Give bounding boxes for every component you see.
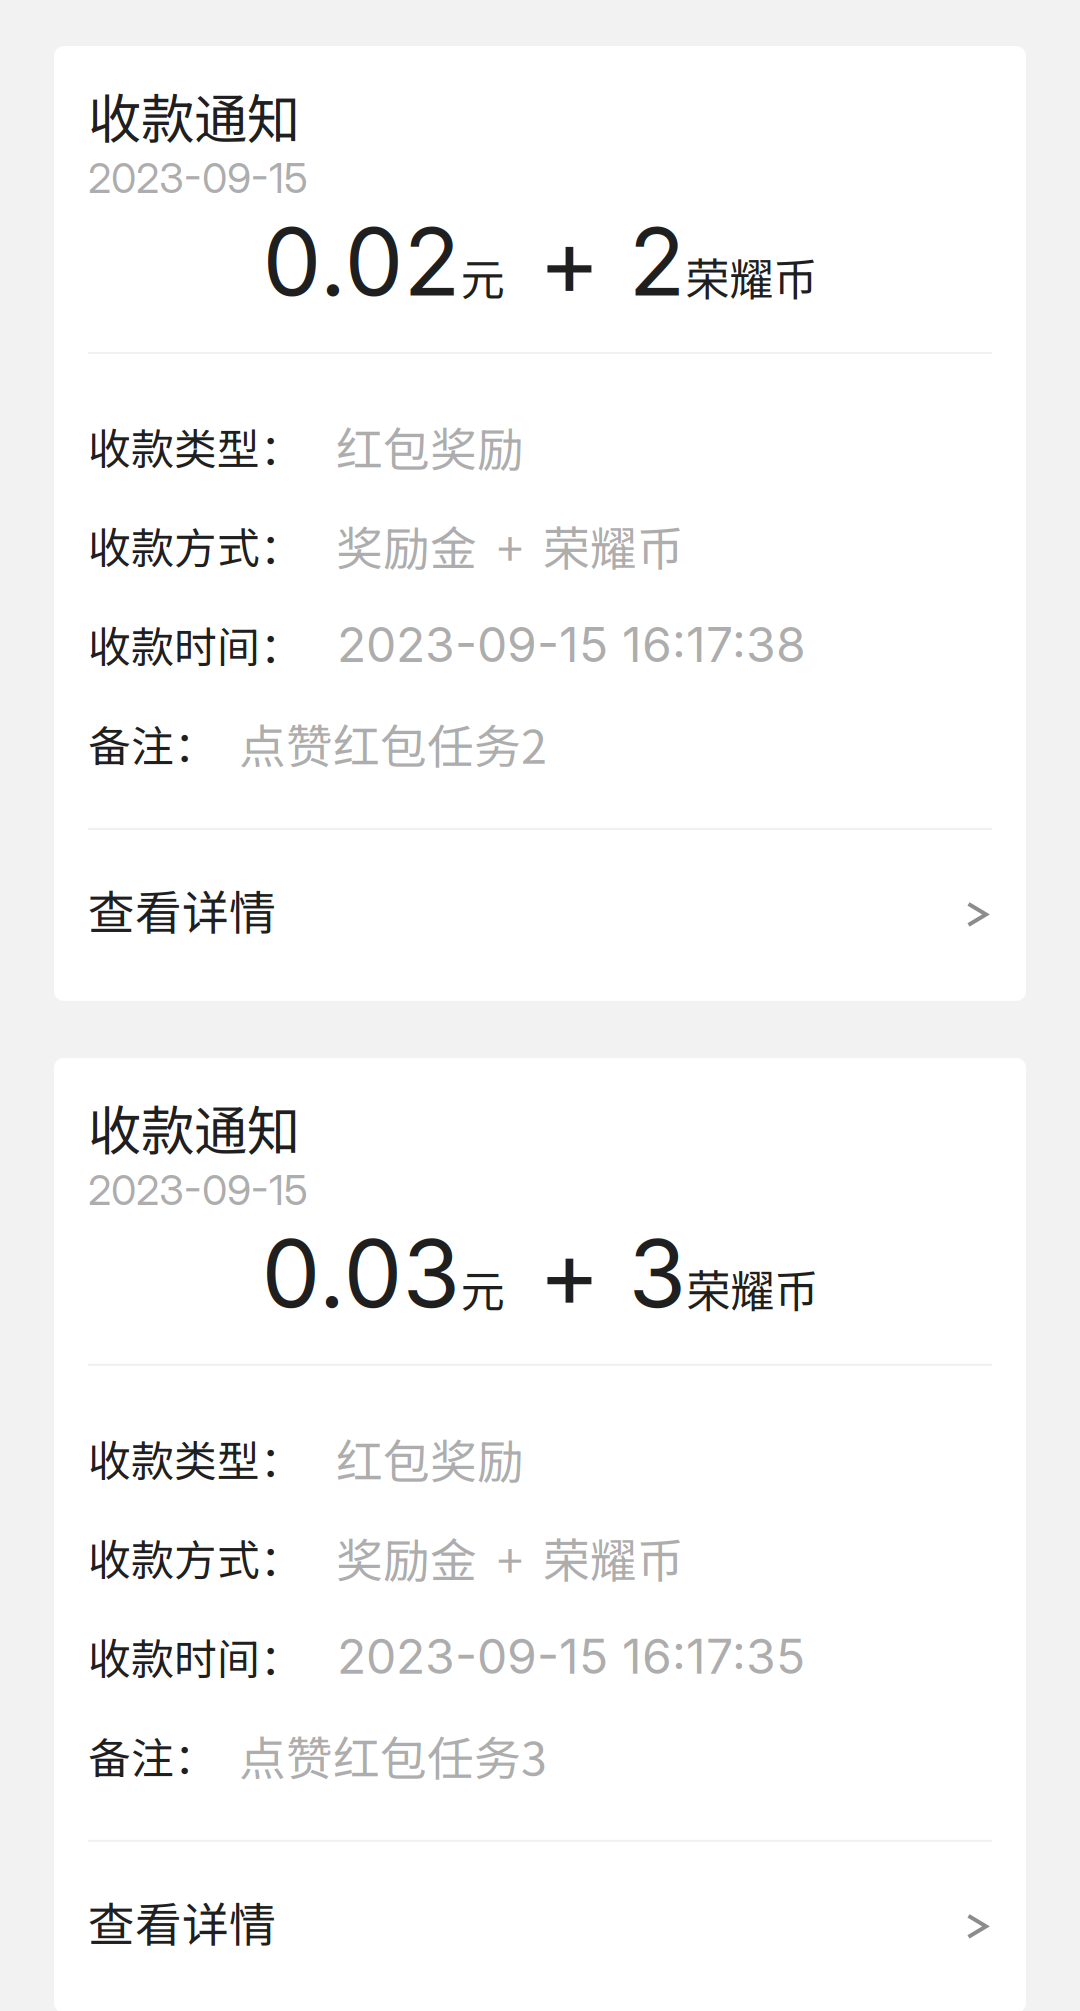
staticText: 收款时间：	[88, 613, 303, 675]
staticText: 2023-09-15 16:17:35	[337, 1627, 805, 1685]
staticText: 查看详情	[88, 1888, 276, 1955]
button[interactable]: 查看详情	[88, 1842, 992, 2011]
staticText: 奖励金 + 荣耀币	[336, 1524, 684, 1591]
staticText: 奖励金 + 荣耀币	[336, 512, 684, 579]
staticText: 收款时间：	[88, 1625, 303, 1687]
button[interactable]: 查看详情	[88, 830, 992, 1001]
staticText: 荣耀币	[686, 1256, 818, 1320]
staticText: 荣耀币	[685, 244, 817, 308]
staticText: 红包奖励	[336, 1425, 524, 1492]
staticText: 点赞红包任务3	[239, 1722, 547, 1789]
staticText: 3	[628, 1217, 686, 1330]
staticText: 0.02	[262, 205, 460, 318]
staticText: 备注：	[88, 712, 217, 774]
staticText: 点赞红包任务2	[239, 710, 547, 777]
staticText: 收款类型：	[88, 1427, 303, 1489]
staticText: 备注：	[88, 1724, 217, 1786]
staticText: 收款通知	[88, 77, 300, 154]
staticText: 查看详情	[88, 876, 276, 943]
staticText: 0.03	[261, 1217, 460, 1330]
staticText: 收款方式：	[88, 514, 303, 576]
staticText: +	[538, 1217, 600, 1330]
staticText: 收款方式：	[88, 1526, 303, 1588]
staticText: 收款通知	[88, 1089, 300, 1166]
staticText: 2	[628, 205, 685, 318]
staticText: 2023-09-15 16:17:38	[337, 615, 806, 673]
staticText: 红包奖励	[336, 413, 524, 480]
staticText: 元	[460, 1256, 504, 1320]
staticText: 2023-09-15	[88, 1165, 308, 1215]
staticText: 2023-09-15	[88, 153, 308, 203]
staticText: 收款类型：	[88, 415, 303, 477]
staticText: 元	[460, 244, 504, 308]
staticText: +	[538, 205, 600, 318]
